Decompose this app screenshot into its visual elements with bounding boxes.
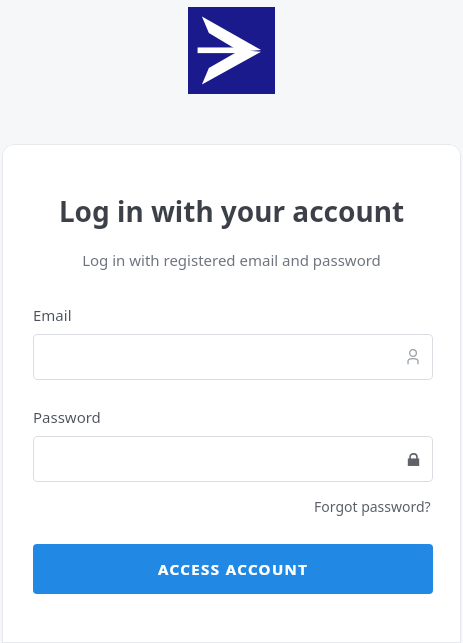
staticText: Email xyxy=(33,305,72,325)
other: App logo xyxy=(188,7,275,94)
button[interactable] xyxy=(33,436,433,482)
button[interactable]: Forgot password? xyxy=(312,495,433,518)
staticText: Log in with your account xyxy=(2,192,461,230)
staticText: Log in with registered email and passwor… xyxy=(2,250,461,270)
staticText: ACCESS ACCOUNT xyxy=(158,559,309,579)
staticText: Forgot password? xyxy=(314,497,431,516)
button[interactable] xyxy=(33,334,433,380)
staticText: Password xyxy=(33,407,101,427)
button[interactable]: ACCESS ACCOUNT xyxy=(33,544,433,594)
